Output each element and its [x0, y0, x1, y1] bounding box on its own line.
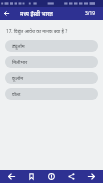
button[interactable]: कूलॉम	[5, 72, 98, 84]
button[interactable]: Previous question	[3, 170, 20, 183]
button[interactable]: वोल्ट	[5, 88, 98, 100]
staticText: ड्यूलॉम	[12, 43, 25, 50]
button[interactable]: Back	[0, 7, 12, 20]
staticText: 3/19	[85, 10, 96, 17]
staticText: 17. विद्युत आवेश का मानक क्या है ?	[6, 28, 68, 34]
button[interactable]: Share	[63, 170, 80, 183]
staticText: मिलीभार	[12, 59, 28, 66]
staticText: वोल्ट	[12, 91, 21, 98]
button[interactable]: Next question	[83, 170, 100, 183]
button[interactable]: Bookmark	[23, 170, 40, 183]
staticText: मध्य ईस्वी भारत	[20, 10, 85, 18]
staticText: कूलॉम	[12, 75, 24, 82]
button[interactable]: Report	[43, 170, 60, 183]
button[interactable]: मिलीभार	[5, 56, 98, 68]
button[interactable]: ड्यूलॉम	[5, 40, 98, 52]
